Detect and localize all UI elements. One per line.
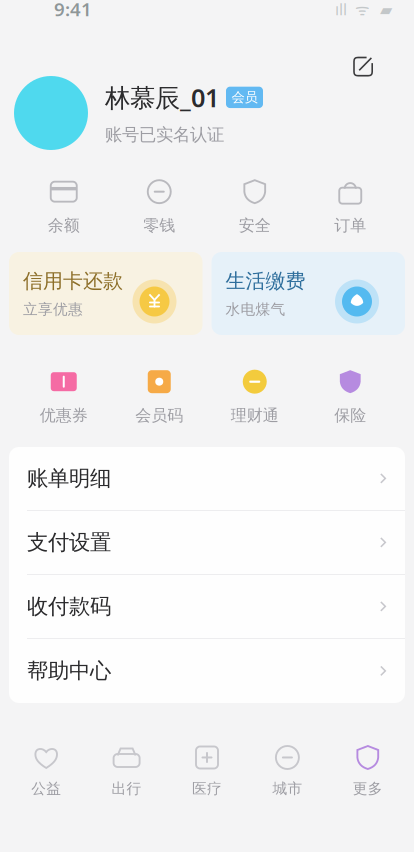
button[interactable]: 优惠券	[16, 366, 111, 428]
staticText: 帮助中心	[27, 658, 111, 684]
staticText: 优惠券	[40, 406, 88, 425]
button[interactable]: 会员码	[111, 366, 207, 428]
button[interactable]: 订单	[302, 176, 398, 238]
staticText: 医疗	[192, 779, 222, 797]
staticText: 水电煤气	[225, 300, 285, 318]
button[interactable]: 理财通	[207, 366, 302, 428]
staticText: 账单明细	[27, 465, 111, 492]
staticText: 生活缴费	[225, 269, 305, 293]
staticText: 信用卡还款	[23, 269, 123, 293]
button[interactable]: 出行	[86, 741, 167, 800]
button[interactable]: 更多	[328, 741, 408, 800]
staticText: 林慕辰_01	[105, 80, 219, 114]
button[interactable]: Compose	[344, 47, 382, 85]
staticText: 公益	[31, 779, 61, 797]
staticText: 零钱	[143, 216, 175, 235]
staticText: 立享优惠	[23, 300, 83, 318]
button[interactable]: 城市	[247, 741, 328, 800]
staticText: 会员	[231, 89, 257, 106]
button[interactable]: 安全	[207, 176, 302, 238]
staticText: 出行	[112, 779, 142, 797]
button[interactable]: 林慕辰_01	[0, 75, 414, 151]
button[interactable]: 零钱	[111, 176, 207, 238]
staticText: 保险	[334, 406, 366, 425]
button[interactable]: 余额	[16, 176, 111, 238]
staticText: 9:41	[54, 0, 92, 21]
staticText: 理财通	[231, 406, 279, 425]
button[interactable]: 保险	[302, 366, 398, 428]
staticText: 会员码	[135, 406, 183, 425]
staticText: 支付设置	[27, 529, 111, 556]
button[interactable]: 生活缴费	[211, 252, 405, 335]
button[interactable]: 医疗	[167, 741, 247, 800]
staticText: 收付款码	[27, 593, 111, 620]
button[interactable]: 公益	[6, 741, 86, 800]
staticText: 城市	[272, 779, 302, 797]
staticText: ıll ᯤ ▰	[335, 0, 392, 20]
staticText: 订单	[334, 216, 366, 235]
staticText: 账号已实名认证	[105, 124, 224, 145]
button[interactable]: 信用卡还款	[9, 252, 202, 335]
button[interactable]: 账单明细	[9, 447, 405, 511]
staticText: 更多	[353, 779, 383, 797]
button[interactable]: 支付设置	[9, 511, 405, 575]
staticText: 安全	[239, 216, 271, 235]
button[interactable]: 帮助中心	[9, 639, 405, 703]
button[interactable]: 收付款码	[9, 575, 405, 639]
staticText: 余额	[48, 216, 80, 235]
